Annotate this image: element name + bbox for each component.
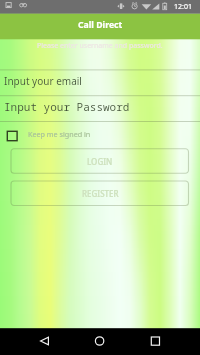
button[interactable]: Recent apps [139,328,172,355]
staticText: Input your email [4,74,82,88]
button[interactable]: Back [28,328,61,355]
staticText: 12:01 [174,2,192,12]
staticText: Input your Password [4,99,130,114]
staticText: Keep me signed in [28,129,91,139]
staticText: Please enter username and password. [37,41,163,51]
button[interactable]: Input your Password [0,96,200,121]
button[interactable]: Call Direct [0,14,200,40]
staticText: Call Direct [78,19,123,31]
staticText: REGISTER [82,188,119,199]
button[interactable]: Home [83,328,116,355]
button[interactable]: REGISTER [11,181,189,206]
button[interactable]: LOGIN [11,149,189,174]
button[interactable]: Input your email [0,70,200,95]
button[interactable]: Keep me signed in [0,126,110,146]
staticText: LOGIN [87,156,113,167]
